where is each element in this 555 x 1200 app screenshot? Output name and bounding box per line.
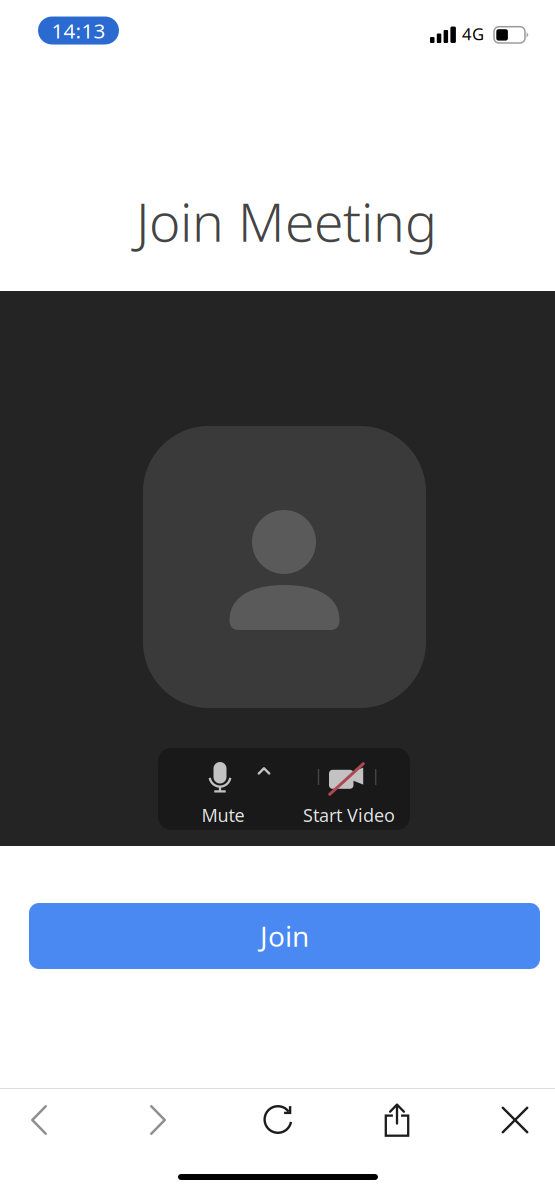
staticText: Start Video bbox=[303, 803, 395, 827]
staticText: 14:13 bbox=[51, 16, 105, 44]
button[interactable]: Reload bbox=[228, 1088, 328, 1152]
button[interactable]: Start Video bbox=[288, 748, 410, 830]
button[interactable]: Back bbox=[0, 1088, 89, 1152]
button[interactable]: Join bbox=[29, 903, 540, 969]
button[interactable]: Mute bbox=[158, 748, 288, 830]
staticText: Join Meeting bbox=[136, 185, 437, 257]
staticText: Join bbox=[260, 917, 309, 955]
button[interactable]: Close bbox=[465, 1088, 555, 1152]
button[interactable]: Forward bbox=[108, 1088, 208, 1152]
staticText: 4G bbox=[462, 22, 484, 45]
button[interactable]: Share bbox=[347, 1088, 447, 1152]
staticText: Mute bbox=[201, 803, 244, 827]
